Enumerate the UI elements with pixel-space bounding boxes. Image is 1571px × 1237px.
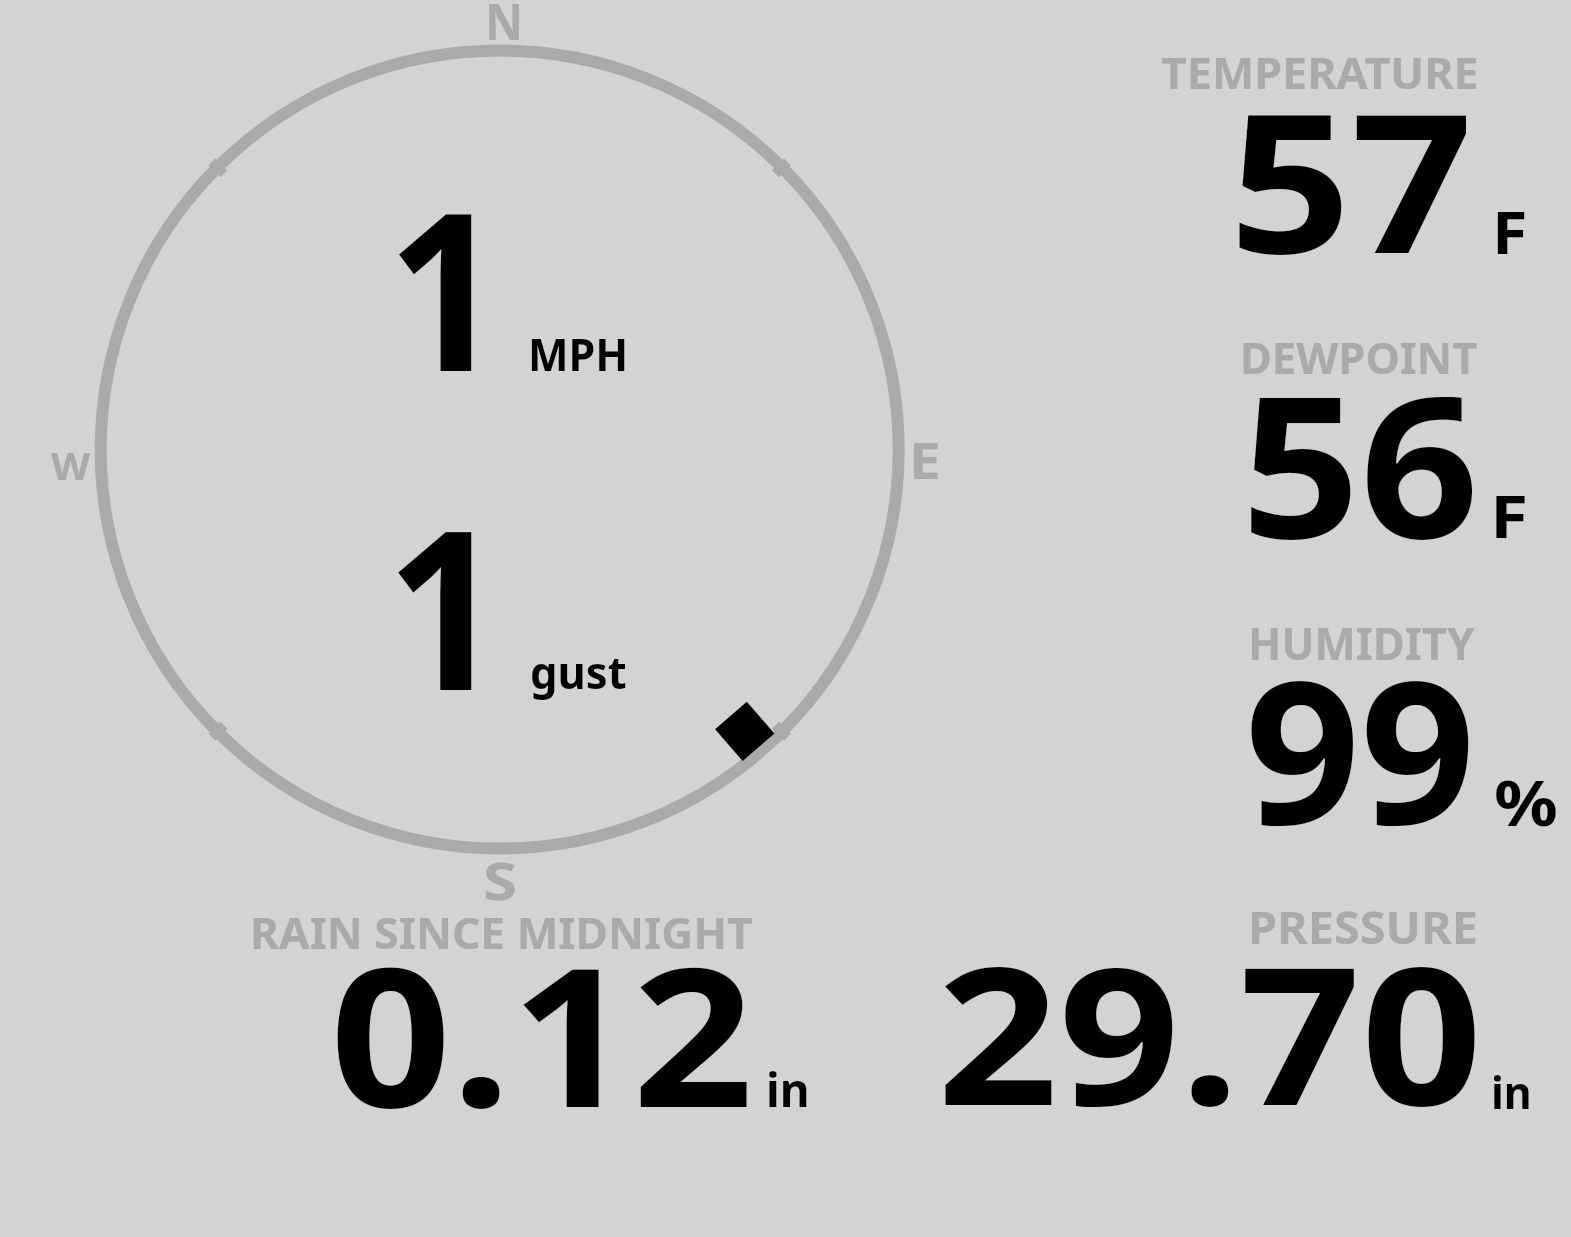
- button[interactable]: Pressure: [900, 875, 1571, 1140]
- button[interactable]: Rain since midnight: [230, 875, 830, 1140]
- staticText: N: [485, 0, 523, 55]
- staticText: 29.70: [937, 902, 1483, 1161]
- staticText: DEWPOINT: [1240, 328, 1477, 387]
- staticText: %: [1494, 759, 1558, 844]
- staticText: RAIN SINCE MIDNIGHT: [250, 903, 753, 962]
- staticText: E: [909, 426, 941, 494]
- staticText: TEMPERATURE: [1161, 43, 1480, 102]
- staticText: 99: [1245, 613, 1476, 882]
- staticText: 56: [1241, 329, 1480, 595]
- staticText: F: [1492, 192, 1529, 271]
- button[interactable]: Temperature: [1100, 20, 1571, 285]
- staticText: W: [51, 440, 90, 491]
- staticText: 1: [387, 136, 504, 435]
- staticText: 57: [1229, 48, 1474, 309]
- staticText: HUMIDITY: [1248, 613, 1474, 673]
- staticText: gust: [530, 640, 627, 702]
- button[interactable]: Dewpoint: [1100, 305, 1571, 570]
- button[interactable]: Humidity: [1100, 590, 1571, 855]
- staticText: 1: [386, 454, 505, 754]
- staticText: S: [483, 845, 518, 915]
- staticText: in: [766, 1058, 810, 1120]
- staticText: in: [1491, 1062, 1533, 1122]
- staticText: MPH: [528, 323, 629, 384]
- staticText: 0.12: [330, 901, 755, 1164]
- staticText: PRESSURE: [1248, 897, 1478, 957]
- button[interactable]: Wind speed and direction: [90, 40, 910, 860]
- staticText: F: [1490, 475, 1529, 556]
